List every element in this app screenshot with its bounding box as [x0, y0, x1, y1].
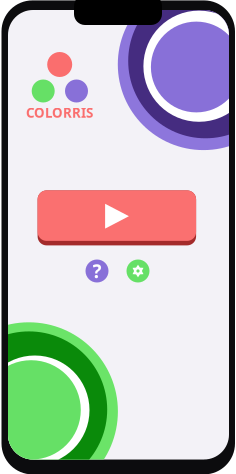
button[interactable]: Help — [85, 259, 108, 282]
button[interactable]: Settings — [126, 259, 149, 282]
button[interactable]: Play — [38, 190, 196, 245]
staticText: ? — [92, 259, 101, 283]
staticText: COLORRIS — [26, 104, 93, 121]
